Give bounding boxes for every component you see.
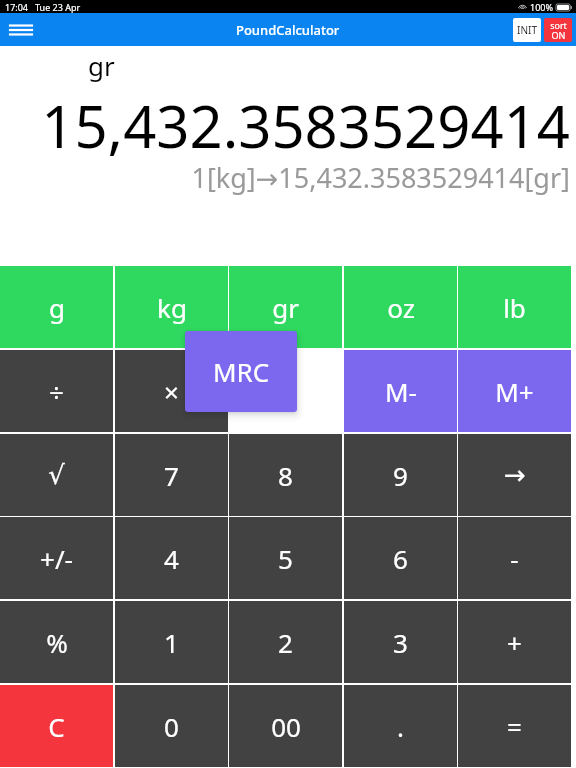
- staticText: %: [46, 625, 68, 660]
- button[interactable]: 2: [229, 601, 342, 683]
- button[interactable]: lb: [458, 266, 571, 348]
- staticText: M-: [385, 374, 417, 409]
- staticText: 4: [164, 541, 179, 576]
- button[interactable]: ÷: [0, 350, 113, 432]
- staticText: 100%: [530, 1, 553, 13]
- button[interactable]: 8: [229, 434, 342, 516]
- button[interactable]: oz: [344, 266, 457, 348]
- staticText: 00: [271, 709, 301, 744]
- staticText: g: [49, 290, 65, 325]
- button[interactable]: 00: [229, 685, 342, 767]
- button[interactable]: →: [458, 434, 571, 516]
- staticText: C: [48, 709, 65, 744]
- button[interactable]: +/-: [0, 517, 113, 599]
- button[interactable]: %: [0, 601, 113, 683]
- staticText: ÷: [49, 374, 64, 409]
- staticText: PoundCalculator: [236, 21, 340, 39]
- staticText: →: [504, 460, 526, 490]
- staticText: 2: [278, 625, 293, 660]
- staticText: sort ON: [550, 19, 567, 41]
- button[interactable]: ×: [115, 350, 228, 432]
- button[interactable]: sort ON: [544, 18, 572, 42]
- button[interactable]: 0: [115, 685, 228, 767]
- button[interactable]: g: [0, 266, 113, 348]
- button[interactable]: =: [458, 685, 571, 767]
- staticText: 9: [393, 458, 408, 493]
- staticText: =: [507, 709, 522, 744]
- button[interactable]: kg: [115, 266, 228, 348]
- staticText: 5: [278, 541, 293, 576]
- staticText: -: [510, 541, 519, 576]
- button[interactable]: Menu: [4, 15, 38, 45]
- staticText: ×: [164, 374, 179, 409]
- button[interactable]: √: [0, 434, 113, 516]
- staticText: INIT: [517, 23, 537, 37]
- button[interactable]: 6: [344, 517, 457, 599]
- staticText: MRC: [213, 354, 270, 389]
- button[interactable]: 1: [115, 601, 228, 683]
- button[interactable]: 4: [115, 517, 228, 599]
- staticText: gr: [88, 48, 115, 83]
- staticText: 17:04 Tue 23 Apr: [5, 1, 81, 13]
- staticText: 7: [164, 458, 179, 493]
- button[interactable]: 3: [344, 601, 457, 683]
- button[interactable]: .: [344, 685, 457, 767]
- staticText: 0: [164, 709, 179, 744]
- staticText: M+: [495, 374, 534, 409]
- staticText: 8: [278, 458, 293, 493]
- button[interactable]: +: [458, 601, 571, 683]
- staticText: 15,432.3583529414: [0, 86, 570, 165]
- staticText: lb: [503, 290, 526, 325]
- staticText: oz: [387, 290, 415, 325]
- staticText: kg: [157, 290, 187, 325]
- button[interactable]: 7: [115, 434, 228, 516]
- button[interactable]: 9: [344, 434, 457, 516]
- button[interactable]: C: [0, 685, 113, 767]
- staticText: gr: [272, 290, 299, 325]
- staticText: .: [397, 709, 404, 744]
- button[interactable]: M+: [458, 350, 571, 432]
- button[interactable]: gr: [229, 266, 342, 348]
- button[interactable]: -: [458, 517, 571, 599]
- button[interactable]: M-: [344, 350, 457, 432]
- button[interactable]: INIT: [513, 18, 541, 42]
- button[interactable]: 5: [229, 517, 342, 599]
- staticText: +/-: [40, 541, 73, 576]
- staticText: 3: [393, 625, 408, 660]
- staticText: 1: [164, 625, 179, 660]
- button[interactable]: MRC: [185, 331, 297, 412]
- staticText: 6: [393, 541, 408, 576]
- staticText: √: [48, 460, 65, 490]
- staticText: +: [507, 625, 522, 660]
- staticText: 1[kg]→15,432.3583529414[gr]: [0, 159, 570, 196]
